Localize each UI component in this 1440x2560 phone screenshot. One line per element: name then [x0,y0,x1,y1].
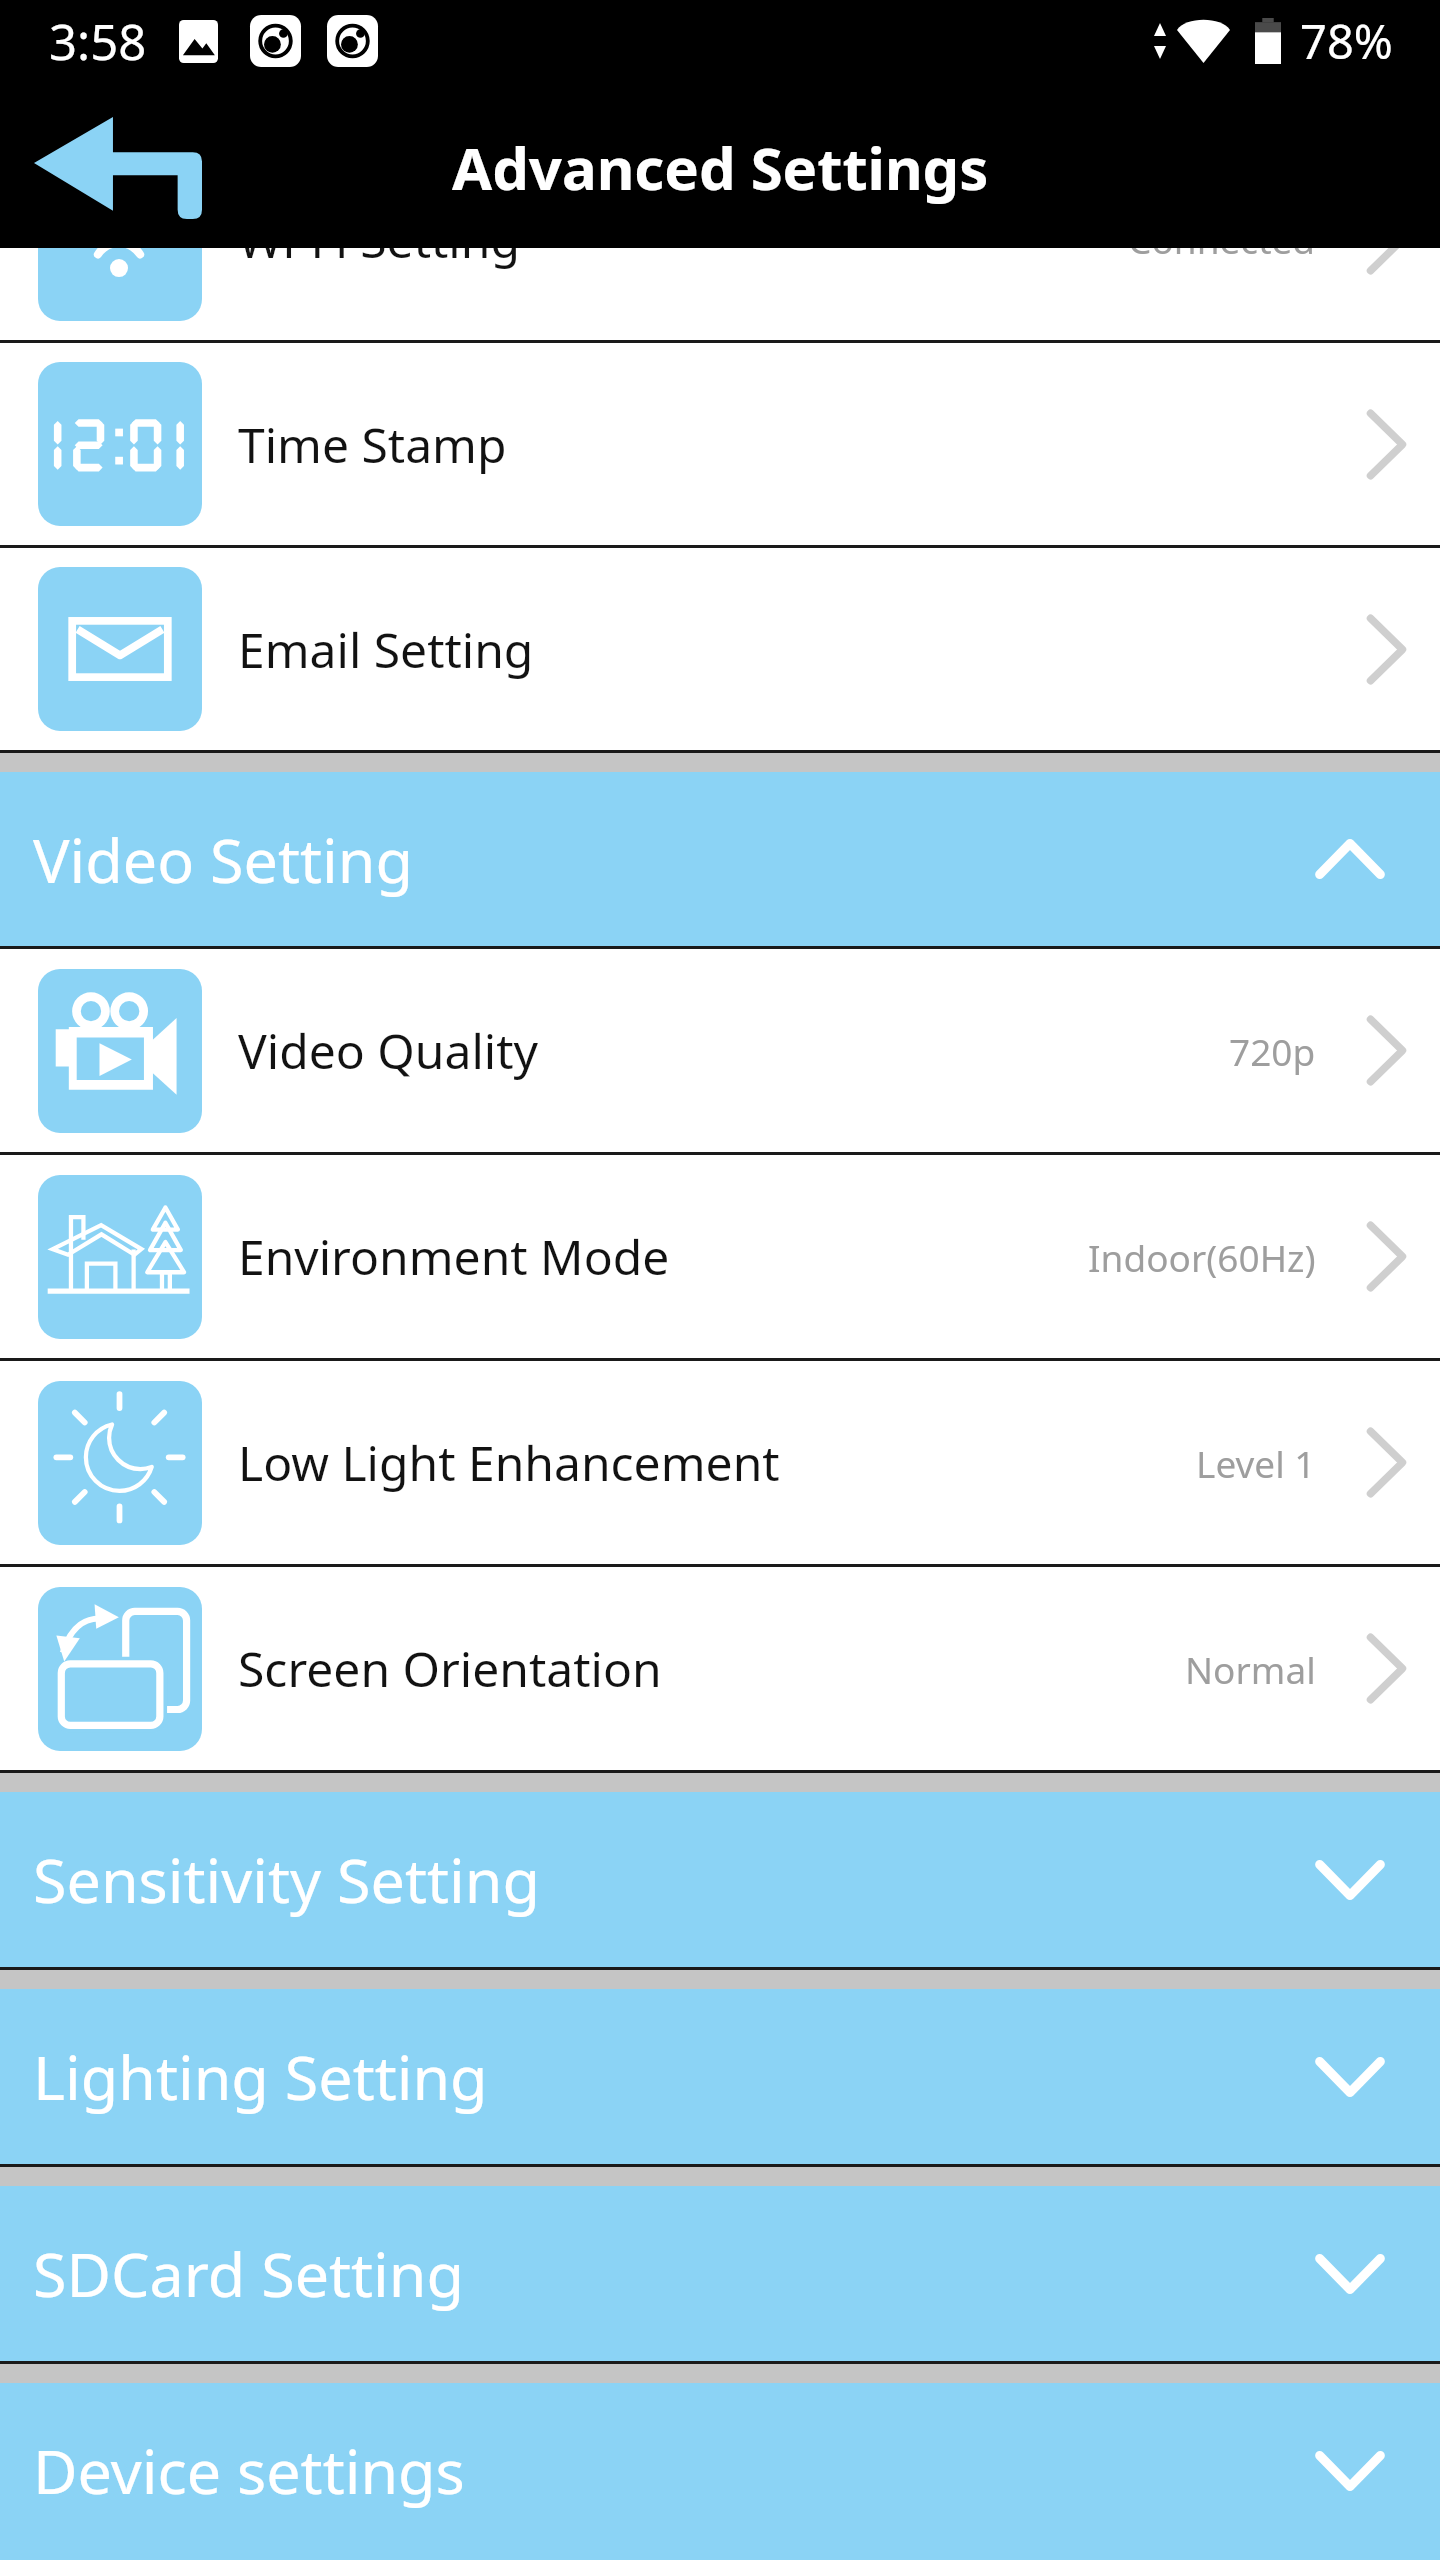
button[interactable]: Low Light Enhancement [0,1361,1440,1564]
staticText: Screen Orientation [238,1636,662,1701]
staticText: Wi-Fi Setting [238,248,520,272]
staticText: Video Quality [238,1018,538,1083]
staticText: Connected [1128,248,1316,264]
staticText: Low Light Enhancement [238,1430,780,1495]
staticText: SDCard Setting [33,2232,465,2315]
staticText: 720p [1229,1026,1316,1076]
button[interactable]: Back [0,96,236,248]
staticText: Video Setting [33,818,413,901]
button[interactable]: Time Stamp [0,343,1440,545]
button[interactable]: Sensitivity Setting [0,1792,1440,1967]
button[interactable]: Screen Orientation [0,1567,1440,1770]
button[interactable]: Video Quality [0,949,1440,1152]
staticText: Level 1 [1196,1438,1316,1488]
staticText: Environment Mode [238,1224,670,1289]
staticText: 78% [1300,9,1393,73]
button[interactable]: Environment Mode [0,1155,1440,1358]
staticText: Time Stamp [238,412,507,477]
staticText: Lighting Setting [33,2035,488,2118]
staticText: 3:58 [49,8,147,75]
button[interactable]: Lighting Setting [0,1989,1440,2164]
staticText: Normal [1185,1644,1316,1694]
button[interactable]: Email Setting [0,548,1440,750]
staticText: Indoor(60Hz) [1088,1232,1316,1282]
staticText: Sensitivity Setting [33,1838,540,1921]
staticText: Advanced Settings [452,128,989,207]
button[interactable]: Wi-Fi Setting [0,248,1440,340]
staticText: Email Setting [238,617,534,682]
staticText: Device settings [33,2429,465,2512]
button[interactable]: SDCard Setting [0,2186,1440,2361]
button[interactable]: Video Setting [0,772,1440,946]
button[interactable]: Device settings [0,2383,1440,2558]
